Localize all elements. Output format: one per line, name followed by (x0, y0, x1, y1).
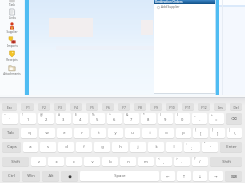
button[interactable]: ← (161, 171, 175, 181)
button[interactable]: } (210, 128, 225, 138)
button[interactable]: x (48, 157, 64, 166)
button[interactable]: s (40, 142, 56, 152)
button[interactable]: a (23, 142, 38, 152)
staticText: ; (191, 145, 193, 151)
button[interactable]: y (108, 128, 123, 138)
button[interactable]: l (166, 142, 182, 152)
button[interactable]: Ins (214, 103, 226, 110)
button[interactable]: Win (22, 171, 40, 181)
button[interactable]: ~ (2, 113, 18, 124)
button[interactable]: t (91, 128, 106, 138)
button[interactable]: ^ (107, 113, 122, 124)
button[interactable]: F5 (86, 103, 98, 110)
button[interactable]: → (209, 171, 223, 181)
button[interactable]: * (141, 113, 156, 124)
button[interactable]: Destination Orders (154, 0, 216, 4)
button[interactable]: % (90, 113, 105, 124)
button[interactable]: Alt (42, 171, 59, 181)
button[interactable]: Ctrl (2, 171, 20, 181)
staticText: ↓ (198, 174, 202, 179)
button[interactable]: { (193, 128, 208, 138)
button[interactable]: n (120, 157, 136, 166)
button[interactable]: p (176, 128, 191, 138)
button[interactable]: o (159, 128, 174, 138)
button[interactable]: Receipts (0, 50, 24, 64)
staticText: s (47, 144, 49, 150)
button[interactable]: j (130, 142, 146, 152)
button[interactable]: F7 (118, 103, 130, 110)
button[interactable]: ( (158, 113, 173, 124)
button[interactable]: Shift (2, 157, 29, 166)
button[interactable]: d (58, 142, 74, 152)
button[interactable]: i (142, 128, 157, 138)
button[interactable]: w (39, 128, 55, 138)
button[interactable]: q (21, 128, 37, 138)
button[interactable]: c (66, 157, 82, 166)
button[interactable]: b (102, 157, 118, 166)
button[interactable]: & (124, 113, 139, 124)
button[interactable]: F6 (102, 103, 114, 110)
button[interactable]: ? (192, 157, 208, 166)
button[interactable]: v (84, 157, 100, 166)
button[interactable]: F10 (166, 103, 178, 110)
button[interactable]: Caps (2, 142, 21, 152)
staticText: 3 (62, 117, 65, 123)
button[interactable]: g (94, 142, 110, 152)
button[interactable]: $ (73, 113, 88, 124)
staticText: ⌨ (231, 174, 237, 179)
button[interactable]: ↓ (193, 171, 207, 181)
button[interactable]: > (174, 157, 190, 166)
button[interactable]: _ (192, 113, 207, 124)
button[interactable]: Links (0, 8, 24, 22)
staticText: [ (200, 131, 202, 137)
button[interactable]: m (138, 157, 154, 166)
button[interactable]: ↑ (177, 171, 191, 181)
button[interactable]: Shift (210, 157, 242, 166)
button[interactable]: Space (80, 171, 159, 181)
button[interactable]: ⌨ (225, 171, 242, 181)
button[interactable]: e (57, 128, 72, 138)
button[interactable]: F11 (182, 103, 194, 110)
button[interactable]: Task (0, 0, 24, 9)
button[interactable]: F9 (150, 103, 162, 110)
button[interactable]: f (76, 142, 92, 152)
button[interactable]: Enter (220, 142, 242, 152)
button[interactable]: Attachments (0, 64, 24, 78)
staticText: @ (40, 113, 43, 117)
staticText: Ctrl (8, 173, 15, 179)
button[interactable]: r (74, 128, 89, 138)
button[interactable]: F8 (134, 103, 146, 110)
button[interactable]: F2 (38, 103, 50, 110)
button[interactable]: F4 (70, 103, 82, 110)
button[interactable]: u (125, 128, 140, 138)
button[interactable]: : (184, 142, 200, 152)
button[interactable]: Tab (2, 128, 19, 138)
button[interactable]: @ (38, 113, 54, 124)
button[interactable]: | (227, 128, 242, 138)
button[interactable]: Imports (0, 36, 24, 50)
button[interactable]: F3 (54, 103, 66, 110)
button[interactable]: h (112, 142, 128, 152)
button[interactable]: + (209, 113, 224, 124)
button[interactable]: ● (61, 171, 78, 181)
button[interactable]: ⌫ (226, 113, 242, 124)
staticText: 4 (79, 117, 82, 123)
staticText: & (126, 113, 129, 117)
staticText: → (214, 174, 218, 179)
button[interactable]: F1 (21, 103, 34, 110)
button[interactable]: F12 (198, 103, 210, 110)
staticText: F1 (26, 105, 30, 109)
button[interactable]: ) (175, 113, 190, 124)
button[interactable]: Add Supplier (154, 5, 216, 9)
button[interactable]: Del (230, 103, 242, 110)
button[interactable]: ! (20, 113, 36, 124)
button[interactable]: < (156, 157, 172, 166)
staticText: e (63, 130, 66, 136)
button[interactable]: k (148, 142, 164, 152)
staticText: / (199, 159, 201, 165)
button[interactable]: # (56, 113, 71, 124)
button[interactable]: z (31, 157, 46, 166)
button[interactable]: Supplier (0, 22, 24, 36)
button[interactable]: Esc (2, 103, 17, 110)
button[interactable]: " (202, 142, 218, 152)
